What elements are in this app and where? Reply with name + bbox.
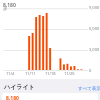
staticText: 6,000 [89,26,100,31]
staticText: ハイライト [4,83,35,91]
staticText: 0 [89,68,92,73]
staticText: 11/25 [64,71,75,76]
staticText: 8,180 [6,95,19,100]
staticText: 11/4 [6,71,15,76]
staticText: 3,000 [89,47,100,52]
staticText: 8,180 [3,2,16,9]
staticText: 9,000 [89,5,100,10]
button[interactable]: 8,180 [2,93,98,100]
button[interactable]: すべて表示 [78,86,100,92]
staticText: 歩 [3,6,7,11]
staticText: 11/18 [45,71,56,76]
staticText: すべて表示 [78,86,100,92]
staticText: 11/11 [25,71,36,76]
